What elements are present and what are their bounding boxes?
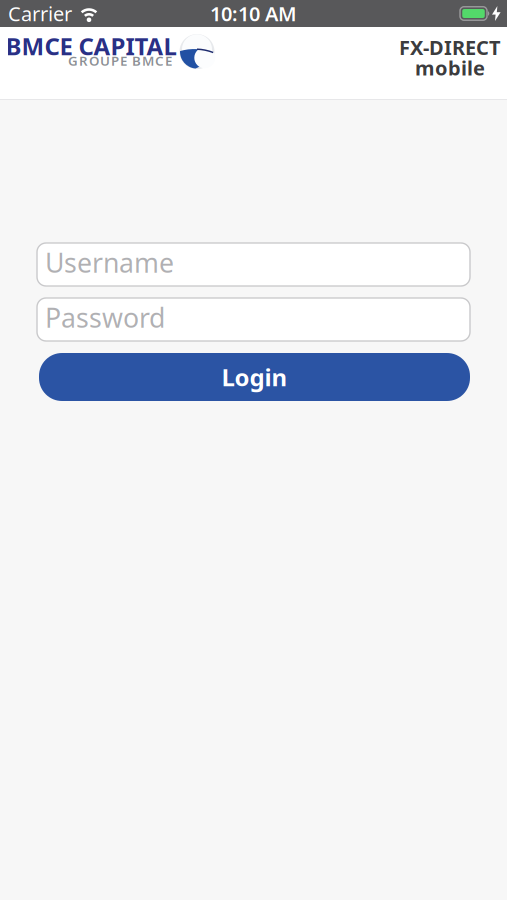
staticText: Login xyxy=(221,361,287,393)
staticText: G R O U P E B M C E xyxy=(68,52,172,69)
staticText: 10:10 AM xyxy=(210,0,297,27)
staticText: BMCE CAPITAL xyxy=(5,30,176,62)
button[interactable]: Login xyxy=(38,353,469,401)
button[interactable]: Username xyxy=(37,243,470,286)
staticText: Carrier xyxy=(8,0,72,27)
staticText: Password xyxy=(45,300,165,335)
staticText: mobile xyxy=(415,54,485,81)
staticText: Username xyxy=(45,245,174,280)
button[interactable]: Password xyxy=(37,298,470,341)
staticText: FX-DIRECT xyxy=(399,34,501,60)
